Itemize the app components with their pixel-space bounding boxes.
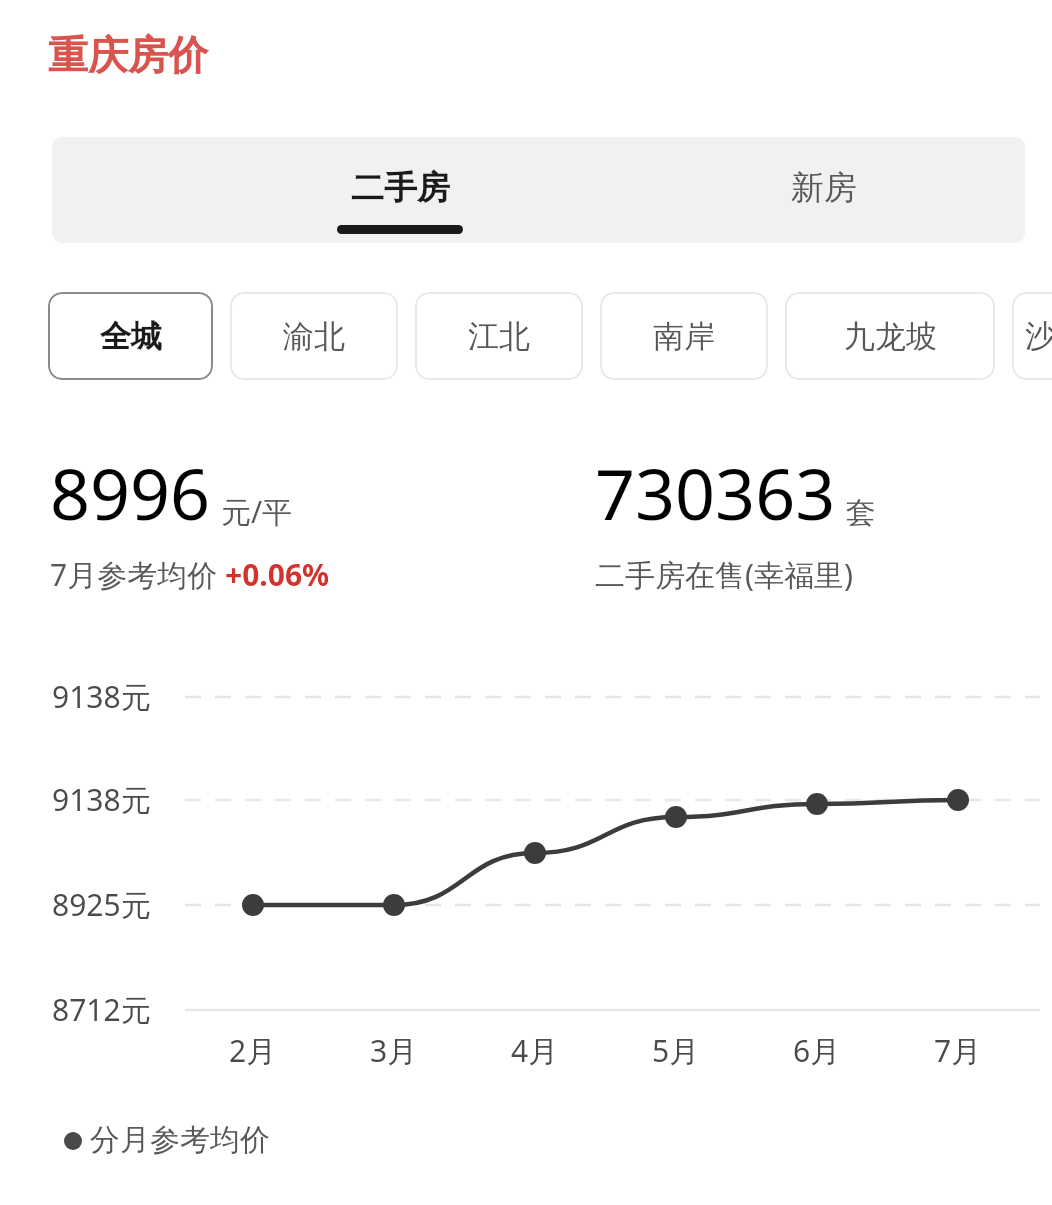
other: Monthly average price legend: [62, 1130, 84, 1152]
staticText: 全城: [100, 317, 162, 356]
button[interactable]: 二手房: [238, 137, 562, 243]
staticText: 4月: [511, 1030, 559, 1071]
staticText: 9138元: [52, 779, 151, 820]
button[interactable]: 江北: [415, 292, 583, 380]
staticText: 6月: [793, 1030, 841, 1071]
staticText: 渝北: [283, 317, 345, 356]
staticText: 重庆房价: [48, 30, 208, 80]
staticText: 沙坪: [1025, 317, 1052, 356]
staticText: 8712元: [52, 989, 151, 1030]
button[interactable]: 分月参考均价: [90, 1121, 270, 1159]
staticText: 套: [846, 494, 876, 532]
staticText: 7月: [934, 1030, 982, 1071]
button[interactable]: 沙坪: [1012, 292, 1052, 380]
button[interactable]: 新房: [662, 137, 986, 243]
staticText: 3月: [370, 1030, 418, 1071]
button[interactable]: 全城: [48, 292, 213, 380]
staticText: 8996: [50, 445, 211, 540]
button[interactable]: 南岸: [600, 292, 768, 380]
button[interactable]: 九龙坡: [785, 292, 995, 380]
staticText: 江北: [468, 317, 530, 356]
staticText: 二手房在售(幸福里): [595, 554, 853, 595]
staticText: 7月参考均价: [50, 554, 225, 595]
staticText: 九龙坡: [844, 317, 937, 356]
staticText: 新房: [791, 167, 857, 209]
staticText: 南岸: [653, 317, 715, 356]
staticText: 二手房: [351, 167, 450, 209]
staticText: 5月: [652, 1030, 700, 1071]
staticText: 9138元: [52, 676, 151, 717]
staticText: 2月: [229, 1030, 277, 1071]
button[interactable]: 渝北: [230, 292, 398, 380]
staticText: 元/平: [221, 491, 293, 532]
staticText: 分月参考均价: [90, 1121, 270, 1159]
staticText: 730363: [595, 445, 836, 540]
staticText: 8925元: [52, 884, 151, 925]
staticText: +0.06%: [225, 554, 330, 595]
